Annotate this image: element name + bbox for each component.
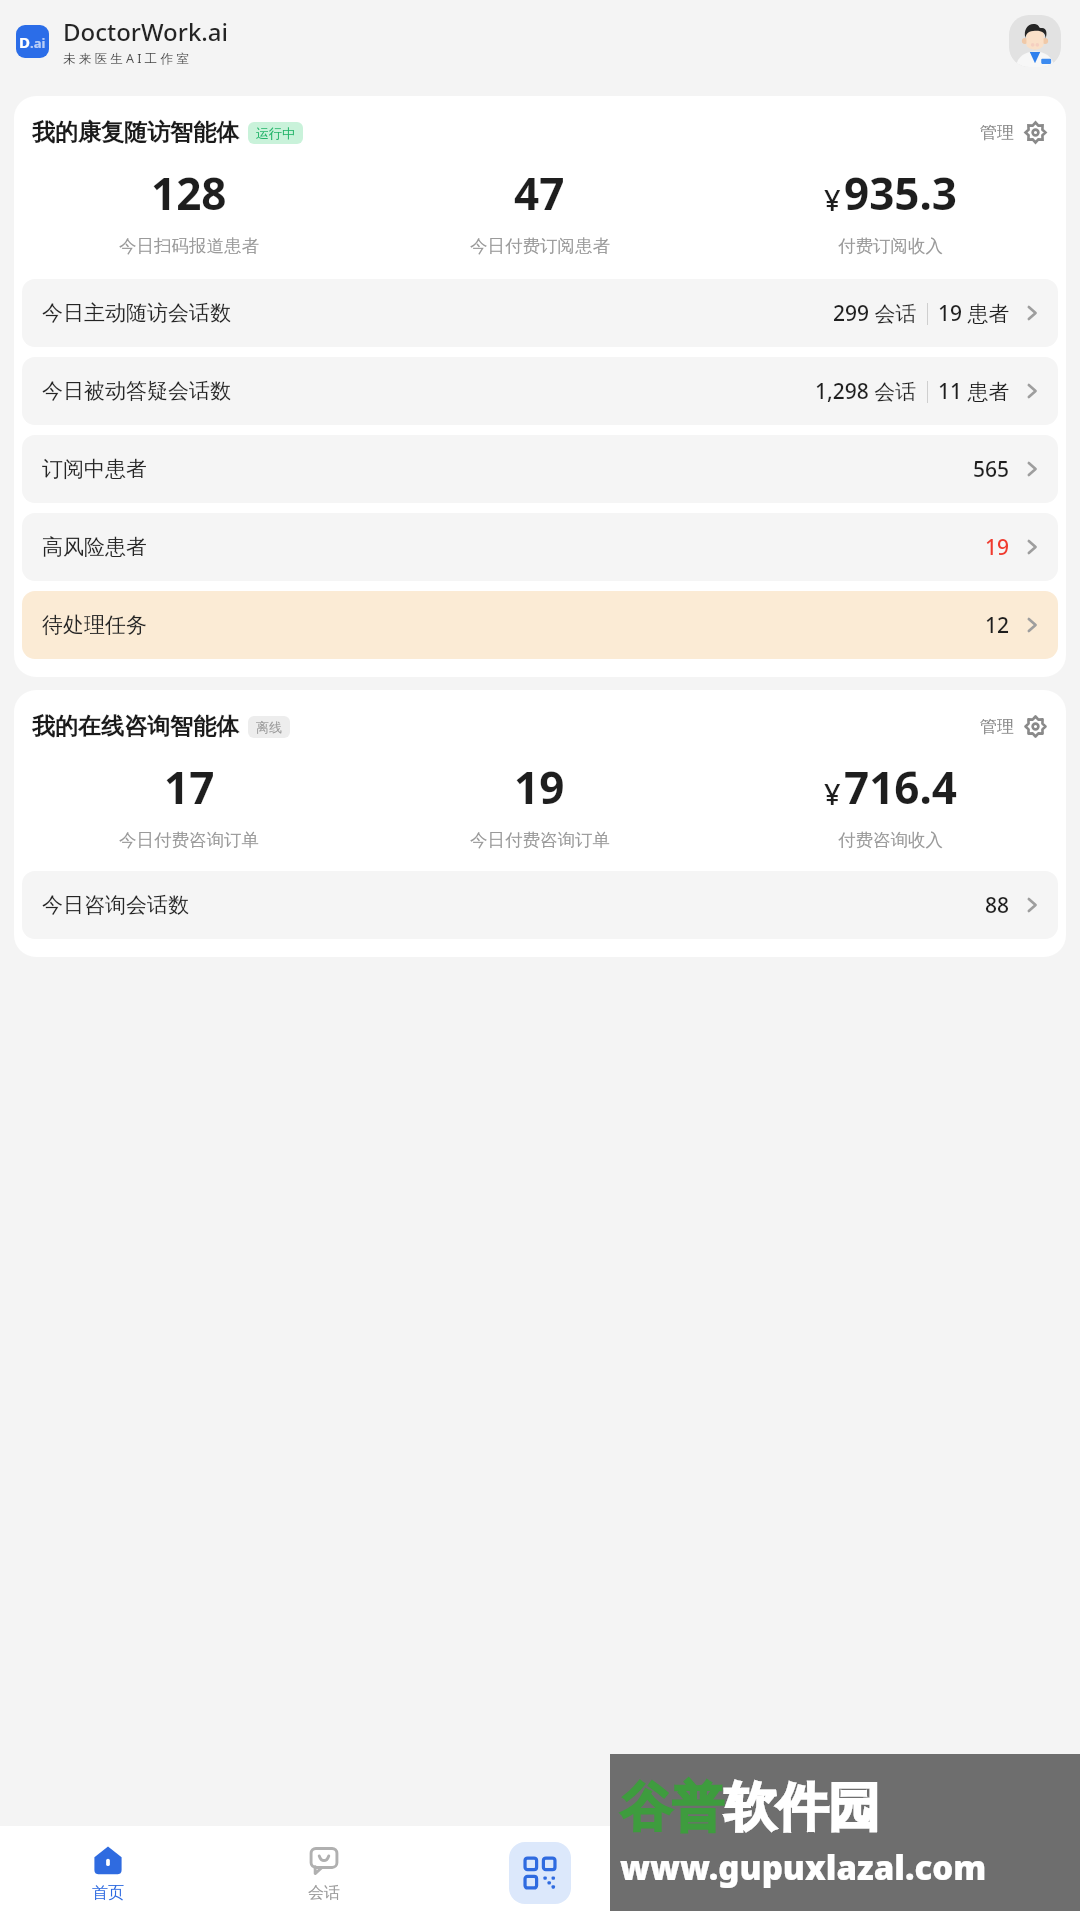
staticText: 管理 <box>980 122 1014 143</box>
button[interactable]: 订阅中患者 <box>22 435 1058 503</box>
staticText: 待处理任务 <box>42 612 147 638</box>
staticText: 订阅中患者 <box>42 456 147 482</box>
staticText: ¥ <box>824 774 841 813</box>
staticText: ¥ <box>824 180 841 219</box>
staticText: 716.4 <box>844 757 958 817</box>
staticText: 47 <box>514 163 565 223</box>
staticText: 运行中 <box>256 125 295 141</box>
button[interactable]: 患者 <box>648 1837 864 1909</box>
staticText: 会话 <box>308 1883 340 1903</box>
staticText: 患者 <box>740 1883 772 1903</box>
staticText: 谷普 <box>620 1775 724 1841</box>
staticText: D <box>19 32 30 52</box>
staticText: 今日被动答疑会话数 <box>42 378 231 404</box>
staticText: 今日付费咨询订单 <box>119 829 259 851</box>
button[interactable]: 高风险患者 <box>22 513 1058 581</box>
button[interactable]: D <box>16 15 229 67</box>
button[interactable]: 今日主动随访会话数 <box>22 279 1058 347</box>
button[interactable]: 首页 <box>0 1837 216 1909</box>
staticText: www.gupuxlazal.com <box>620 1845 987 1890</box>
staticText: 88 <box>985 891 1010 920</box>
staticText: DoctorWork.ai <box>63 15 229 48</box>
staticText: 今日付费订阅患者 <box>470 235 610 257</box>
button[interactable]: 今日咨询会话数 <box>22 871 1058 939</box>
button[interactable]: 管理 <box>980 120 1048 145</box>
button[interactable]: 待处理任务 <box>22 591 1058 659</box>
button[interactable]: 今日被动答疑会话数 <box>22 357 1058 425</box>
staticText: 今日主动随访会话数 <box>42 300 231 326</box>
button[interactable]: 会话 <box>216 1837 432 1909</box>
staticText: 565 <box>973 455 1010 484</box>
staticText: 今日付费咨询订单 <box>470 829 610 851</box>
staticText: 今日扫码报道患者 <box>119 235 259 257</box>
staticText: 首页 <box>92 1883 124 1903</box>
staticText: 935.3 <box>844 163 958 223</box>
staticText: 17 <box>164 757 215 817</box>
staticText: .ai <box>30 34 46 52</box>
button[interactable]: 管理 <box>980 714 1048 739</box>
staticText: 11 患者 <box>938 377 1010 406</box>
staticText: 未 来 医 生 A I 工 作 室 <box>63 50 189 67</box>
staticText: 高风险患者 <box>42 534 147 560</box>
staticText: 1,298 会话 <box>815 377 917 406</box>
staticText: 付费订阅收入 <box>838 235 943 257</box>
staticText: 今日咨询会话数 <box>42 892 189 918</box>
staticText: 299 会话 <box>833 299 917 328</box>
button[interactable]: Profile <box>1009 15 1061 67</box>
button[interactable]: 我的 <box>864 1837 1080 1909</box>
staticText: 离线 <box>256 719 282 735</box>
staticText: 管理 <box>980 716 1014 737</box>
staticText: 我的康复随访智能体 <box>32 118 239 147</box>
staticText: 软件园 <box>724 1775 880 1841</box>
staticText: 128 <box>151 163 227 223</box>
staticText: 19 患者 <box>938 299 1010 328</box>
staticText: 我的在线咨询智能体 <box>32 712 239 741</box>
staticText: 12 <box>985 611 1010 640</box>
button[interactable]: Scan QR code <box>509 1842 571 1904</box>
staticText: 付费咨询收入 <box>838 829 943 851</box>
staticText: 19 <box>985 533 1010 562</box>
staticText: 19 <box>514 757 565 817</box>
